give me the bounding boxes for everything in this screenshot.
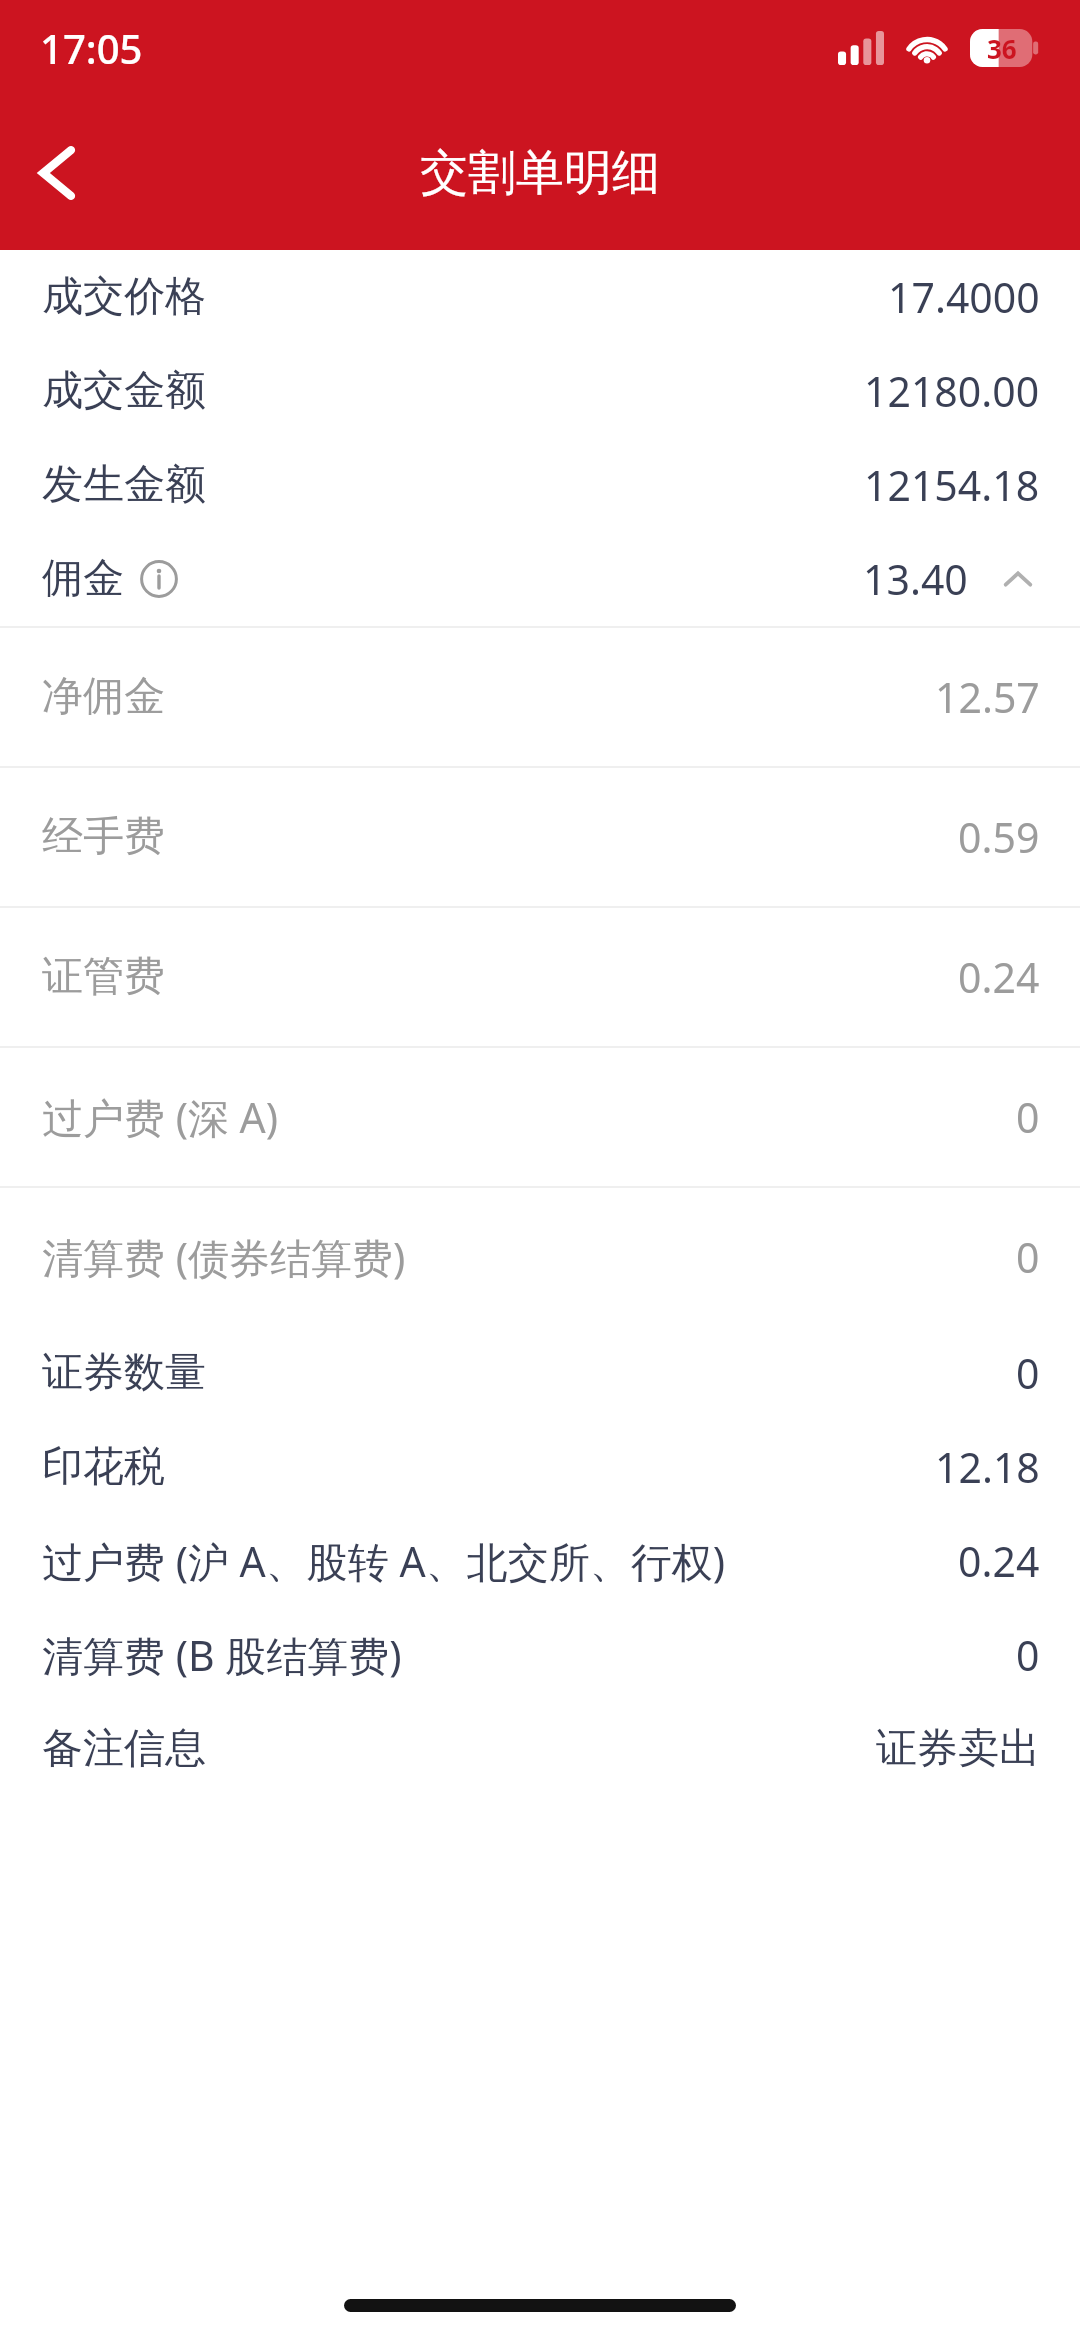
other: Collapse: [996, 557, 1040, 601]
staticText: 0: [1016, 1345, 1040, 1401]
staticText: 12.57: [935, 669, 1040, 725]
staticText: 发生金额: [42, 459, 206, 511]
staticText: 证券数量: [42, 1347, 206, 1399]
button[interactable]: 证管费: [0, 908, 1080, 1046]
staticText: 0: [1016, 1089, 1040, 1145]
button[interactable]: 清算费 (债券结算费): [0, 1188, 1080, 1326]
staticText: 佣金: [42, 553, 124, 605]
staticText: 证券卖出: [876, 1723, 1040, 1775]
staticText: 印花税: [42, 1441, 165, 1493]
staticText: 17.4000: [888, 269, 1040, 325]
staticText: 0.24: [958, 949, 1040, 1005]
staticText: 过户费 (深 A): [42, 1089, 279, 1145]
button[interactable]: 成交金额: [0, 344, 1080, 438]
button[interactable]: 成交价格: [0, 250, 1080, 344]
staticText: 过户费 (沪 A、股转 A、北交所、行权): [42, 1533, 725, 1589]
staticText: 12154.18: [864, 457, 1040, 513]
staticText: 36: [987, 31, 1017, 66]
staticText: 17:05: [40, 21, 143, 75]
staticText: 12180.00: [864, 363, 1040, 419]
button[interactable]: 佣金: [0, 532, 1080, 626]
staticText: 备注信息: [42, 1723, 206, 1775]
staticText: 证管费: [42, 951, 165, 1003]
button[interactable]: Back: [12, 129, 100, 217]
staticText: 12.18: [935, 1439, 1040, 1495]
staticText: 0.24: [958, 1533, 1040, 1589]
staticText: 清算费 (B 股结算费): [42, 1627, 402, 1683]
button[interactable]: 证券数量: [0, 1326, 1080, 1420]
staticText: 13.40: [863, 551, 968, 607]
staticText: 成交金额: [42, 365, 206, 417]
staticText: 0: [1016, 1627, 1040, 1683]
staticText: 净佣金: [42, 671, 165, 723]
button[interactable]: 清算费 (B 股结算费): [0, 1608, 1080, 1702]
button[interactable]: 备注信息: [0, 1702, 1080, 1796]
button[interactable]: 过户费 (深 A): [0, 1048, 1080, 1186]
button[interactable]: 发生金额: [0, 438, 1080, 532]
staticText: 成交价格: [42, 271, 206, 323]
other: Commission info: [140, 560, 178, 598]
button[interactable]: 经手费: [0, 768, 1080, 906]
staticText: 经手费: [42, 811, 165, 863]
staticText: 0: [1016, 1229, 1040, 1285]
button[interactable]: 印花税: [0, 1420, 1080, 1514]
staticText: 交割单明细: [420, 143, 660, 203]
button[interactable]: 过户费 (沪 A、股转 A、北交所、行权): [0, 1514, 1080, 1608]
button[interactable]: 净佣金: [0, 628, 1080, 766]
staticText: 0.59: [958, 809, 1040, 865]
staticText: 清算费 (债券结算费): [42, 1229, 406, 1285]
